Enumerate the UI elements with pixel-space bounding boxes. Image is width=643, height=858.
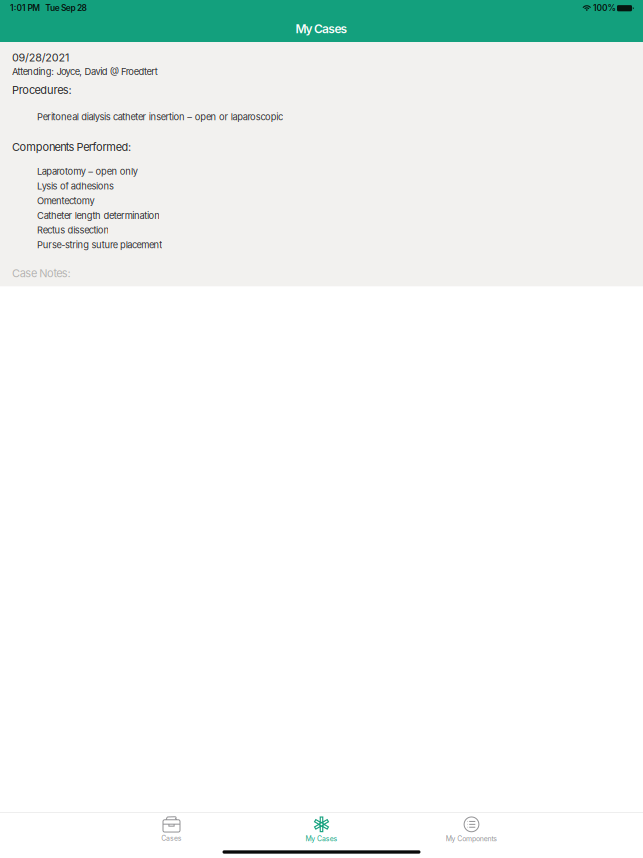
staticText: Catheter length determination xyxy=(37,210,160,221)
staticText: Rectus dissection xyxy=(37,224,109,236)
staticText: Cases xyxy=(161,834,182,842)
staticText: Lysis of adhesions xyxy=(37,180,114,192)
button[interactable]: Cases xyxy=(96,813,246,845)
staticText: Purse-string suture placement xyxy=(37,239,162,250)
staticText: Laparotomy – open only xyxy=(37,166,138,177)
button[interactable]: My Cases xyxy=(246,813,396,845)
staticText: 100% xyxy=(591,3,617,13)
staticText: Procedures: xyxy=(12,83,71,97)
staticText: My Cases xyxy=(295,22,348,36)
staticText: Peritoneal dialysis catheter insertion –… xyxy=(37,111,283,122)
button[interactable]: My Components xyxy=(396,813,546,845)
staticText: My Components xyxy=(446,835,497,843)
staticText: Tue Sep 28 xyxy=(40,3,87,13)
staticText: Omentectomy xyxy=(37,195,94,206)
staticText: 09/28/2021 xyxy=(12,51,69,64)
staticText: My Cases xyxy=(305,835,338,843)
staticText: 1:01 PM xyxy=(10,3,40,13)
staticText: Attending: Joyce, David @ Froedtert xyxy=(12,66,158,77)
staticText: Components Performed: xyxy=(12,140,131,154)
staticText: Case Notes: xyxy=(12,266,70,280)
